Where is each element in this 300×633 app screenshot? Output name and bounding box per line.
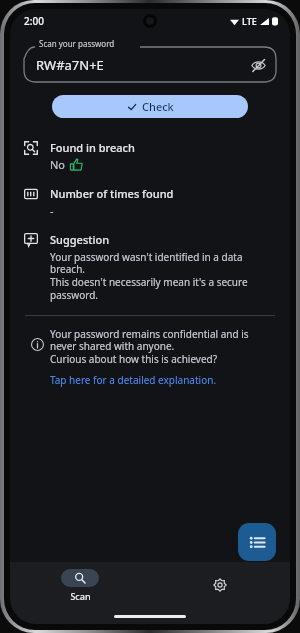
button[interactable]: Check [52,95,248,118]
staticText: Scan [70,590,91,602]
staticText: Suggestion [50,232,110,247]
staticText: RW#a7N+E [36,56,104,74]
staticText: Your password remains confidential and i… [50,327,249,366]
staticText: Tap here for a detailed explanation. [50,373,217,387]
staticText: Your password wasn't identified in a dat… [50,250,248,302]
staticText: LTE [242,15,257,27]
staticText: Check [142,99,174,114]
staticText: Scan your password [39,38,115,49]
staticText: Found in breach [50,140,135,155]
staticText: 2:00 [24,14,44,28]
button[interactable]: Show password [246,53,270,77]
staticText: Number of times found [50,186,174,201]
staticText: - [50,203,54,218]
staticText: No [50,157,66,172]
button[interactable]: History list [238,523,276,561]
button[interactable]: Tap here for a detailed explanation. [50,373,217,387]
button[interactable]: Scan [61,569,99,602]
button[interactable]: Scan your password [22,41,278,84]
button[interactable]: Settings [201,566,239,604]
